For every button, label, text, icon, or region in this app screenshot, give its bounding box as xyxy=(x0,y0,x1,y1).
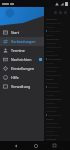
staticText: Verbindungen xyxy=(11,39,36,44)
button[interactable]: Home xyxy=(31,141,40,150)
staticText: Einstellungen xyxy=(11,66,34,71)
button[interactable]: Nachrichten xyxy=(0,55,44,64)
staticText: Nachrichten xyxy=(11,57,32,62)
button[interactable]: Start xyxy=(0,28,44,37)
staticText: Hilfe xyxy=(11,75,19,80)
button[interactable]: Recents xyxy=(50,141,59,150)
button[interactable]: Einstellungen xyxy=(0,64,44,73)
staticText: Start xyxy=(11,30,20,35)
button[interactable]: Verbindungen xyxy=(0,37,44,46)
staticText: Verwaltung werden xyxy=(11,84,42,89)
button[interactable]: Back xyxy=(11,141,20,150)
button[interactable]: Hilfe xyxy=(0,73,44,82)
button[interactable]: Termine xyxy=(0,46,44,55)
button[interactable]: Verwaltung werden xyxy=(0,82,44,91)
staticText: Termine xyxy=(11,48,25,53)
